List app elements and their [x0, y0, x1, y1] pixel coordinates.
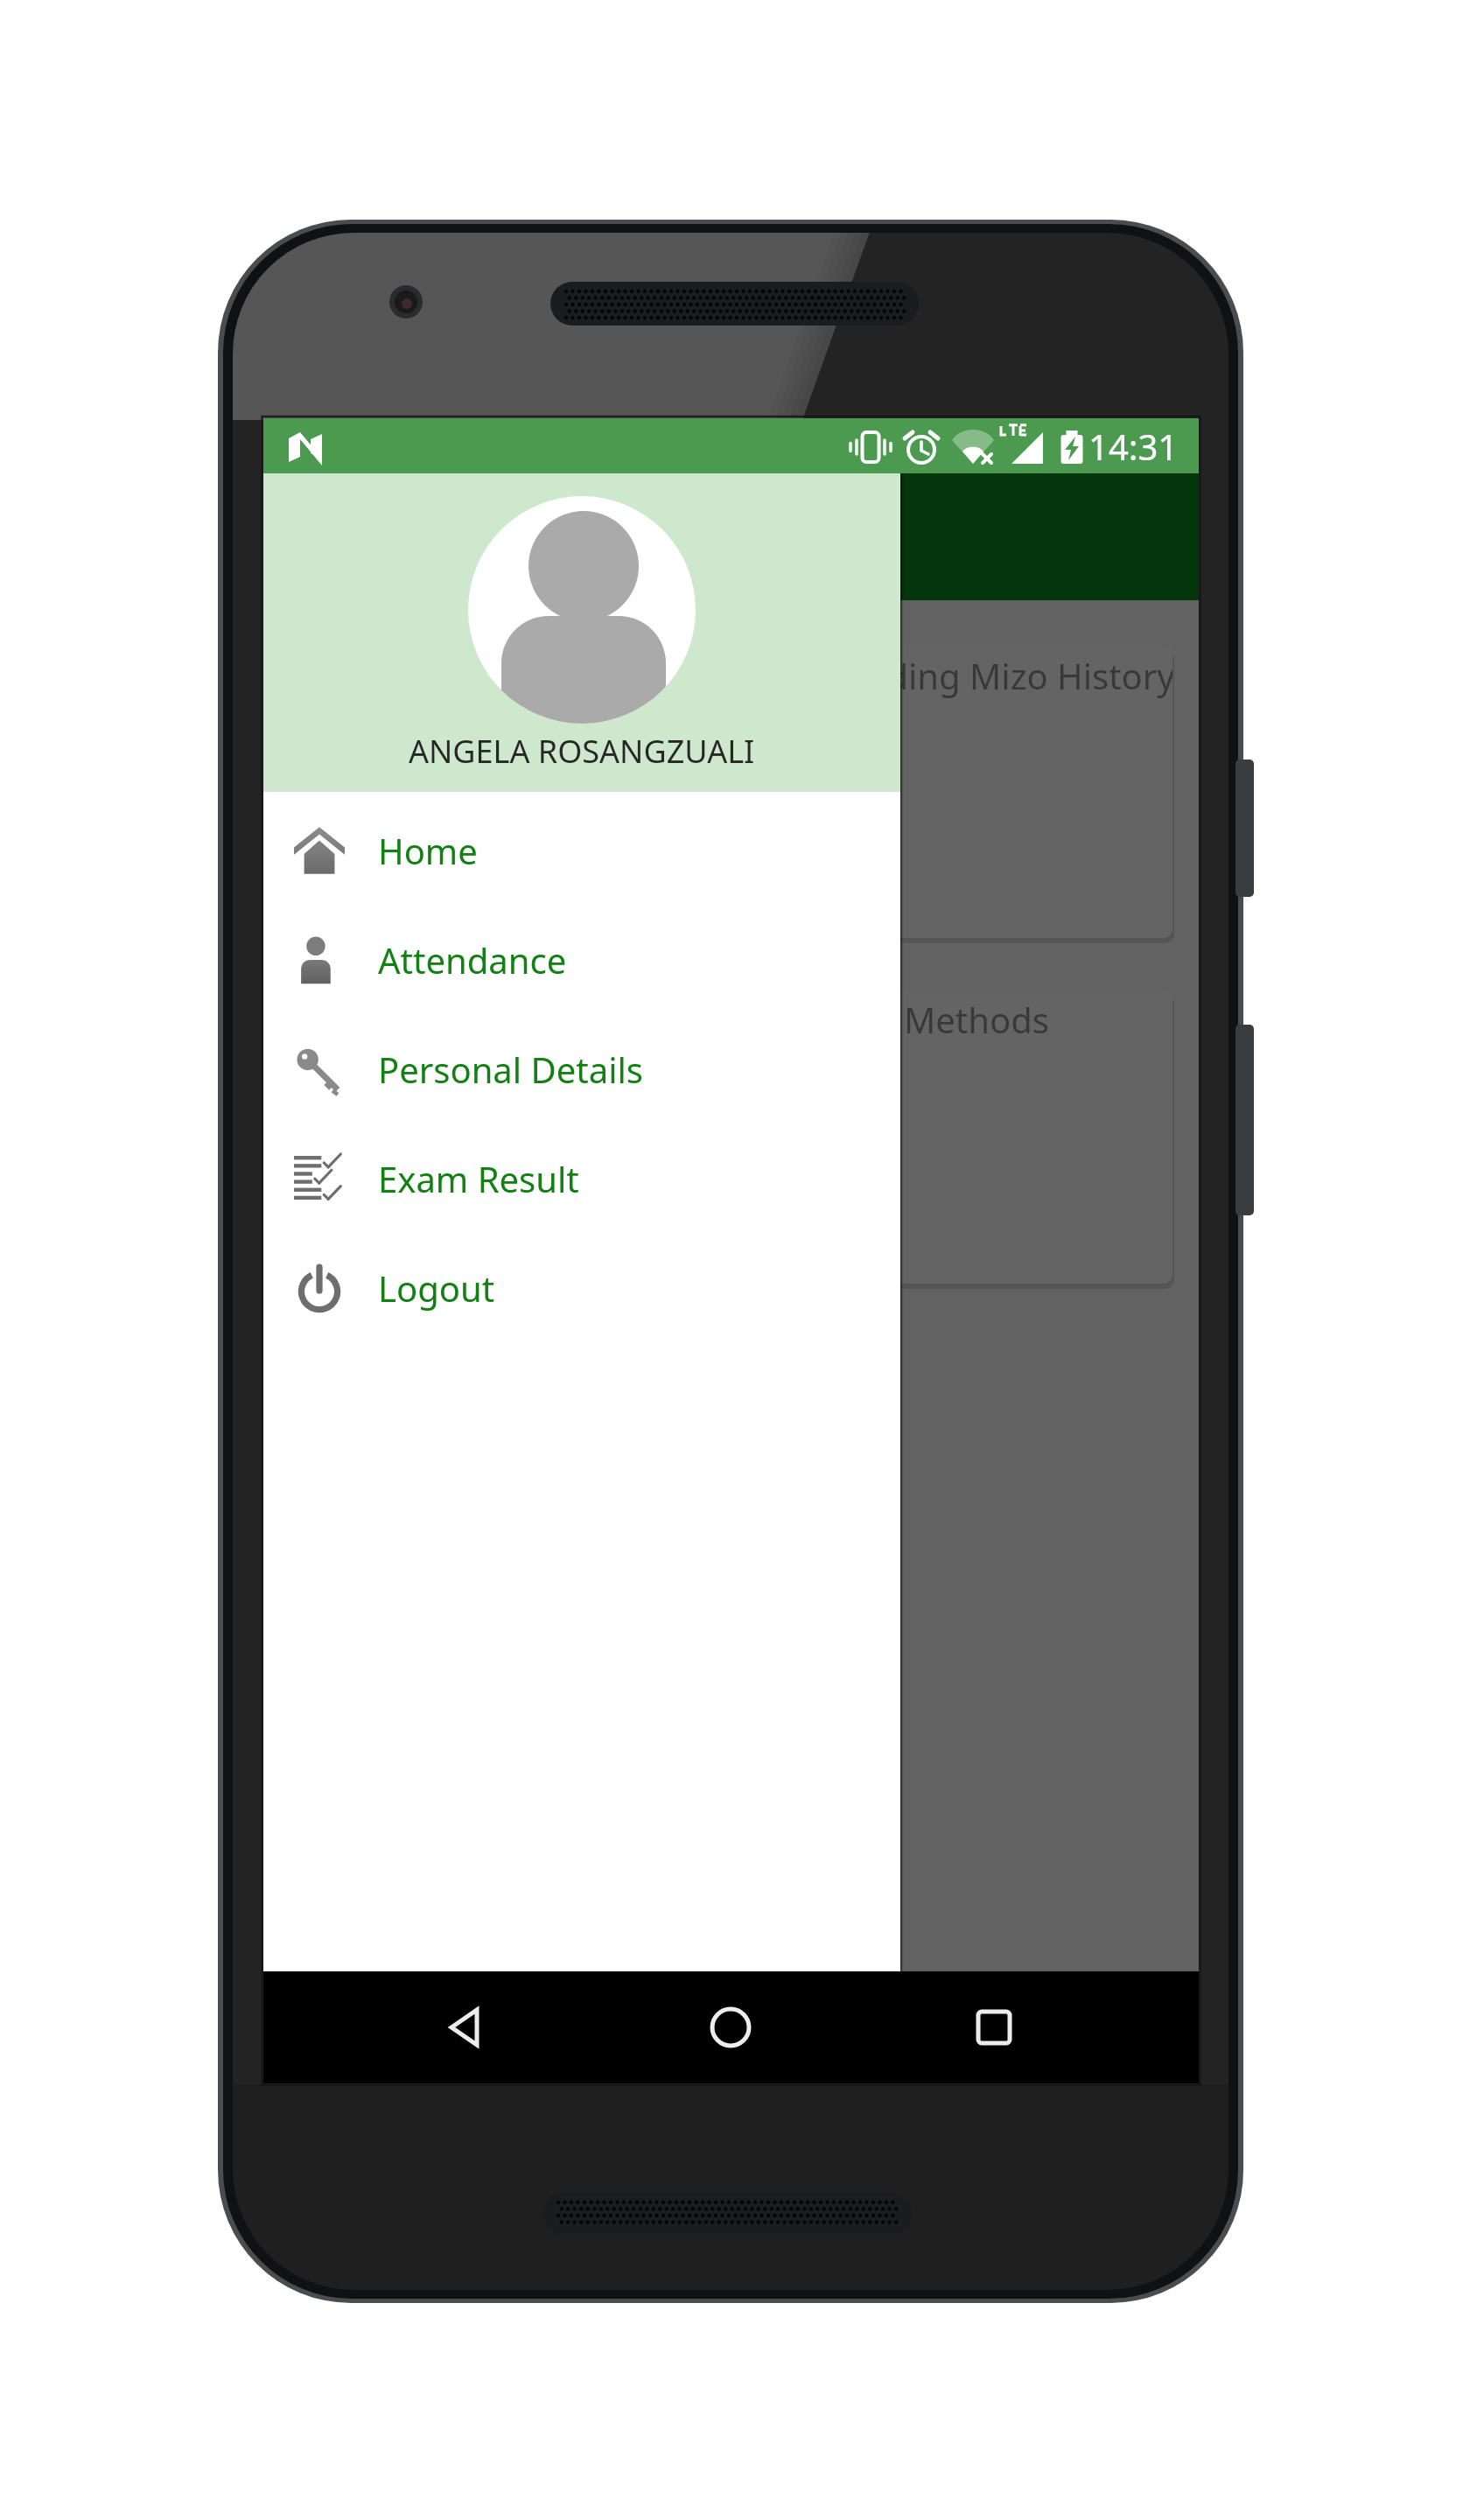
button[interactable]: Home: [263, 795, 900, 905]
staticText: 14:31: [1088, 423, 1179, 470]
button[interactable]: ANGELA ROSANGZUALI: [263, 473, 900, 792]
button[interactable]: Recent apps: [946, 1971, 1042, 2083]
staticText: Historical Methods: [740, 996, 1049, 1043]
staticText: Home: [378, 827, 478, 874]
staticText: Personal Details: [378, 1046, 643, 1093]
button[interactable]: Exam Result: [263, 1123, 900, 1233]
button[interactable]: Home: [682, 1971, 779, 2083]
button[interactable]: Attendance: [263, 905, 900, 1014]
button[interactable]: Personal Details: [263, 1014, 900, 1123]
staticText: Understanding Mizo History: [713, 652, 1172, 699]
button[interactable]: Back: [417, 1971, 514, 2083]
button[interactable]: Understanding Mizo History: [297, 645, 1172, 938]
button[interactable]: Historical Methods: [297, 989, 1172, 1284]
staticText: ANGELA ROSANGZUALI: [409, 730, 755, 773]
staticText: Attendance: [378, 936, 567, 983]
button[interactable]: Logout: [263, 1233, 900, 1342]
staticText: Logout: [378, 1264, 495, 1312]
staticText: Exam Result: [378, 1155, 579, 1202]
